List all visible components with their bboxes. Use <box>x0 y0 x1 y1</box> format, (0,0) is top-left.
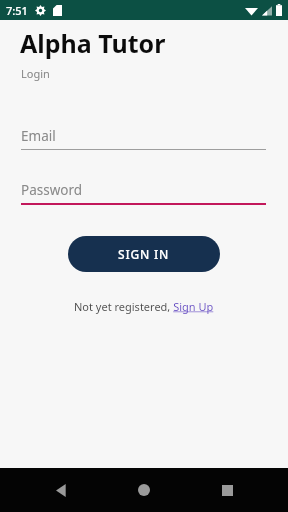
button[interactable]: Back <box>39 468 83 512</box>
button[interactable]: Home <box>122 468 166 512</box>
button[interactable]: Not yet registered, Sign Up <box>66 297 222 316</box>
staticText: 7:51 <box>6 3 28 18</box>
staticText: Password <box>21 181 83 199</box>
staticText: Email <box>21 127 56 145</box>
button[interactable]: Recent apps <box>205 468 249 512</box>
staticText: SIGN IN <box>118 246 170 262</box>
staticText: Alpha Tutor <box>20 26 166 60</box>
staticText: Login <box>21 66 50 81</box>
button[interactable]: Password <box>21 181 266 205</box>
button[interactable]: Email <box>21 127 266 150</box>
staticText: Not yet registered, Sign Up <box>74 299 214 314</box>
button[interactable]: SIGN IN <box>68 236 220 272</box>
